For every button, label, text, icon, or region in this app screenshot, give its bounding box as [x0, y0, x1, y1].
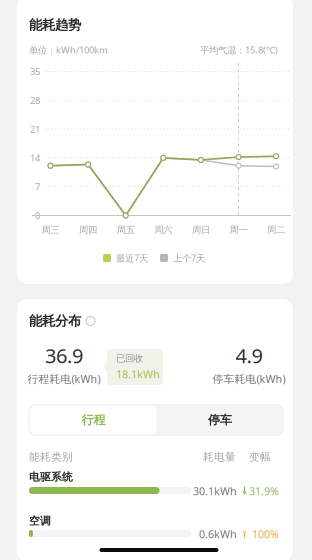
staticText: 0 [35, 209, 40, 222]
staticText: 31.9% [249, 484, 279, 498]
staticText: 周日 [192, 224, 210, 236]
button[interactable]: 停车 [158, 406, 281, 434]
staticText: 能耗类别 [29, 450, 73, 463]
button[interactable]: 行程 [30, 406, 156, 434]
staticText: 周五 [117, 224, 135, 236]
staticText: 平均气温：15.8(℃) [200, 44, 278, 56]
staticText: 行程耗电(kWh) [27, 372, 100, 386]
staticText: 周一 [229, 224, 247, 236]
staticText: 上个7天 [173, 252, 205, 264]
staticText: 周六 [154, 224, 172, 236]
staticText: 28 [30, 94, 40, 106]
staticText: 周四 [79, 224, 97, 236]
staticText: 30.1kWh [193, 484, 237, 498]
staticText: 变幅 [249, 450, 271, 463]
staticText: 100% [252, 527, 279, 541]
staticText: 电驱系统 [29, 470, 73, 483]
staticText: 4.9 [235, 342, 262, 369]
staticText: 单位：kWh/100km [29, 44, 108, 56]
staticText: 停车 [208, 413, 232, 427]
staticText: 耗电量 [203, 450, 236, 463]
staticText: 能耗趋势 [29, 17, 81, 33]
staticText: 周三 [41, 224, 59, 236]
staticText: 18.1kWh [116, 367, 160, 381]
staticText: 停车耗电(kWh) [212, 372, 285, 386]
staticText: 35 [30, 65, 40, 78]
staticText: 0.6kWh [199, 527, 237, 541]
staticText: 7 [35, 180, 40, 193]
staticText: 空调 [29, 514, 51, 527]
staticText: 36.9 [45, 342, 83, 369]
staticText: 能耗分布 [29, 313, 81, 329]
staticText: 14 [30, 152, 40, 164]
staticText: 行程 [81, 413, 105, 427]
staticText: 已回收 [116, 353, 143, 364]
staticText: 21 [30, 123, 40, 135]
staticText: 最近7天 [116, 252, 148, 264]
staticText: 周二 [267, 224, 285, 236]
